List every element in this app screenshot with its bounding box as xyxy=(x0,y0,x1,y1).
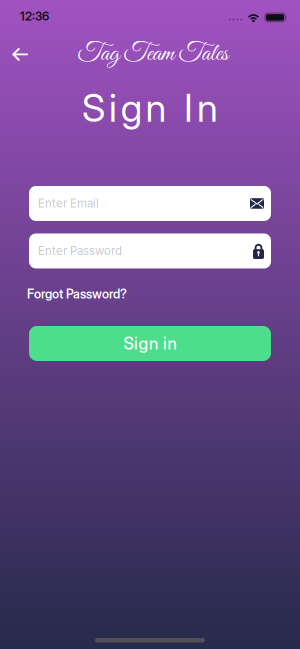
staticText: Sign in xyxy=(123,333,176,354)
button[interactable]: Sign in xyxy=(29,326,271,361)
staticText: Forgot Password? xyxy=(27,286,127,301)
staticText: Sign In xyxy=(82,85,218,131)
staticText: Tag Team Tales xyxy=(77,38,228,70)
staticText: Enter Password xyxy=(38,244,122,258)
button[interactable]: Forgot Password? xyxy=(27,286,127,301)
button[interactable]: Back xyxy=(0,40,28,69)
staticText: Enter Email xyxy=(38,197,99,210)
staticText: 12:36 xyxy=(20,9,49,23)
